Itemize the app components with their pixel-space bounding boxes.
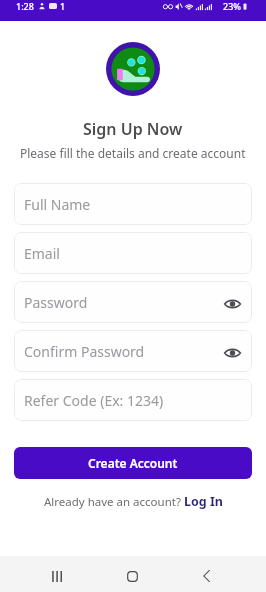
button[interactable]: Create Account: [14, 447, 252, 479]
staticText: Confirm Password: [24, 342, 145, 361]
staticText: Refer Code (Ex: 1234): [24, 391, 164, 410]
staticText: Log In: [184, 493, 223, 510]
button[interactable]: Full Name: [14, 183, 252, 225]
staticText: Sign Up Now: [83, 118, 183, 140]
staticText: Already have an account?: [44, 494, 184, 510]
button[interactable]: Back: [182, 558, 230, 592]
staticText: Please fill the details and create accou…: [20, 145, 246, 161]
button[interactable]: Recents: [33, 558, 81, 592]
button[interactable]: Email: [14, 232, 252, 274]
staticText: Email: [24, 244, 60, 263]
button[interactable]: Confirm Password: [14, 330, 252, 372]
staticText: 1: [60, 0, 66, 12]
button[interactable]: Refer Code (Ex: 1234): [14, 379, 252, 421]
staticText: Password: [24, 293, 88, 312]
staticText: 23%: [223, 0, 241, 12]
staticText: 1:28: [16, 0, 34, 12]
button[interactable]: Show password: [222, 343, 242, 363]
button[interactable]: Show password: [222, 294, 242, 314]
staticText: Full Name: [24, 195, 91, 214]
button[interactable]: Password: [14, 281, 252, 323]
button[interactable]: Log In: [184, 493, 223, 510]
staticText: Create Account: [88, 455, 178, 471]
button[interactable]: Home: [108, 558, 156, 592]
